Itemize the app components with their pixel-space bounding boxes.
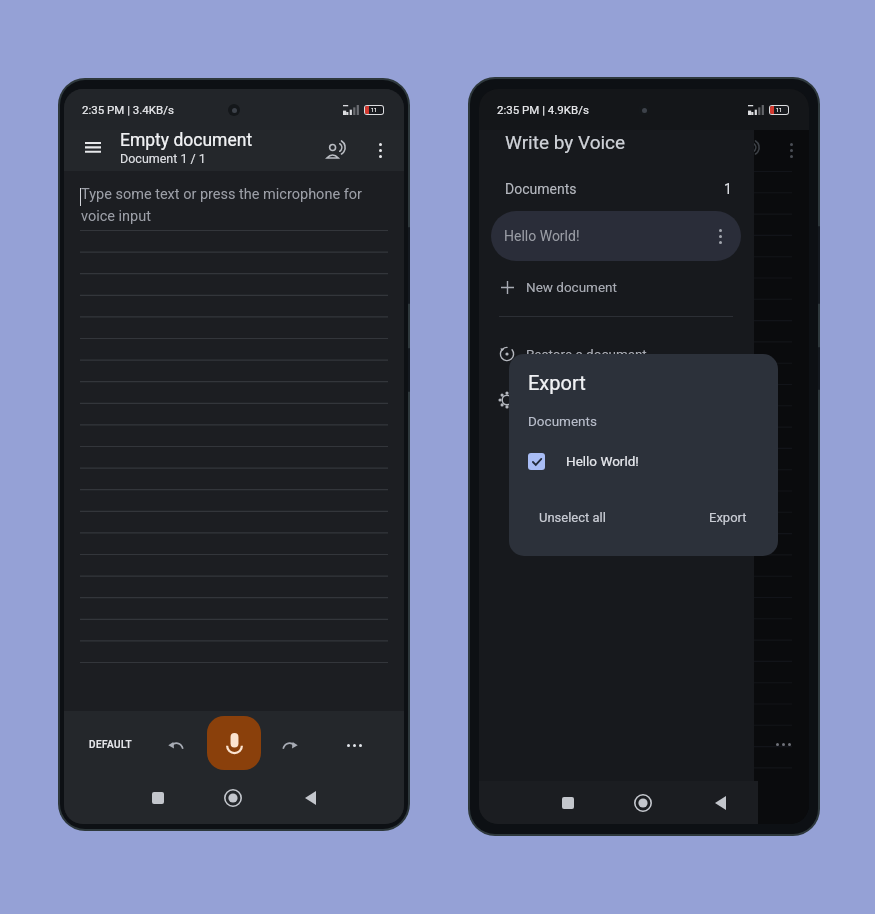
- staticText: 2:35 PM | 4.9KB/s: [497, 103, 589, 116]
- button[interactable]: DEFAULT: [80, 731, 141, 759]
- button[interactable]: Redo: [269, 725, 311, 765]
- staticText: 11: [371, 107, 378, 113]
- button[interactable]: Recents: [549, 784, 587, 822]
- button[interactable]: More: [334, 725, 374, 765]
- staticText: 2:35 PM | 3.4KB/s: [82, 103, 174, 116]
- button[interactable]: Record voice over: [315, 130, 359, 171]
- button[interactable]: Back: [701, 784, 739, 822]
- button[interactable]: Hello World!: [509, 447, 778, 475]
- staticText: Documents: [528, 413, 597, 429]
- button[interactable]: Home: [214, 779, 252, 817]
- staticText: Document 1 / 1: [120, 151, 206, 166]
- button[interactable]: Recents: [139, 779, 177, 817]
- staticText: 11: [776, 107, 783, 113]
- staticText: Hello World!: [566, 453, 639, 469]
- staticText: DEFAULT: [89, 739, 132, 751]
- staticText: Export: [528, 371, 586, 394]
- staticText: Hello World!: [504, 228, 580, 244]
- button[interactable]: Restore a document: [479, 333, 754, 375]
- staticText: Unselect all: [539, 510, 606, 525]
- button[interactable]: Open navigation drawer: [71, 130, 115, 171]
- button[interactable]: Microphone: [207, 716, 261, 770]
- button[interactable]: Export: [697, 502, 759, 533]
- staticText: Documents: [505, 181, 577, 197]
- button[interactable]: Hello World!: [491, 211, 741, 261]
- button[interactable]: Settings: [479, 379, 754, 421]
- button[interactable]: More options: [362, 130, 398, 171]
- staticText: 1: [724, 181, 732, 197]
- staticText: Type some text or press the microphone f…: [81, 186, 394, 224]
- staticText: Write by Voice: [505, 131, 626, 153]
- staticText: Restore a document: [526, 346, 647, 362]
- button[interactable]: Home: [624, 784, 662, 822]
- button[interactable]: Unselect all: [527, 502, 618, 533]
- staticText: New document: [526, 279, 617, 295]
- button[interactable]: Undo: [154, 725, 196, 765]
- staticText: Empty document: [120, 130, 253, 151]
- staticText: Settings: [526, 392, 576, 408]
- button[interactable]: New document: [479, 266, 754, 308]
- button[interactable]: Back: [291, 779, 329, 817]
- staticText: Export: [709, 510, 747, 525]
